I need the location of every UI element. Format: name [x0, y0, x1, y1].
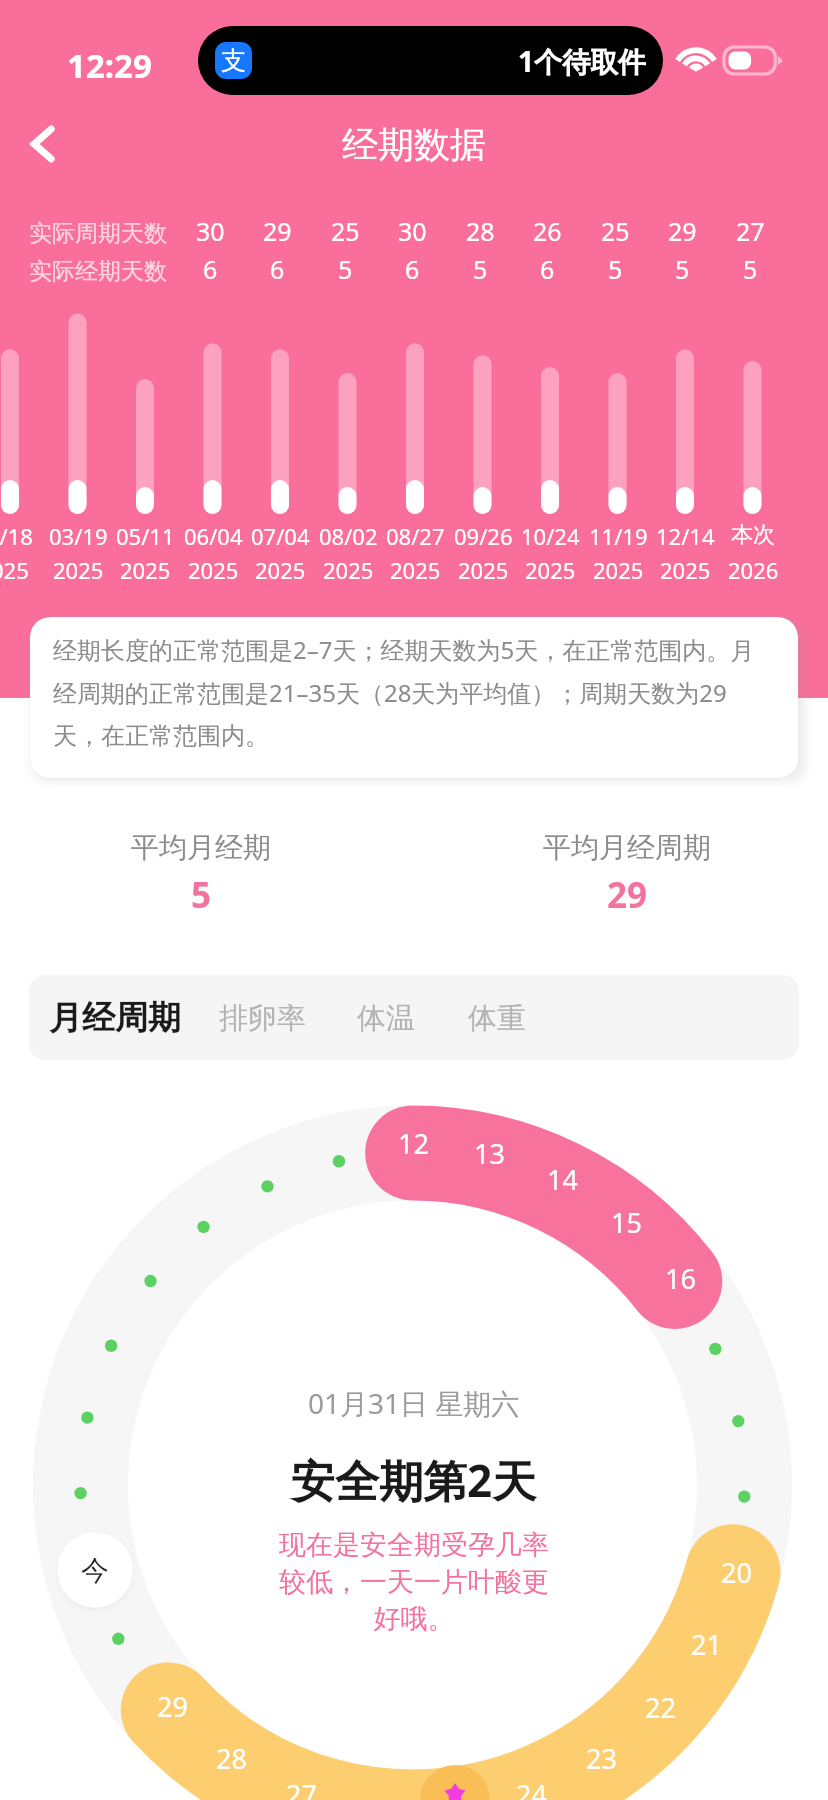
staticText: 现在是安全期受孕几率较低，一天一片叶酸更好哦。 [278, 1528, 550, 1636]
staticText: 26 [533, 214, 562, 248]
button[interactable]: 体重 [468, 1000, 526, 1037]
staticText: 6 [405, 252, 420, 286]
staticText: 07/04 [251, 521, 310, 551]
staticText: 29 [157, 1688, 188, 1725]
staticText: 5 [473, 252, 488, 286]
button[interactable]: 排卵率 [219, 1000, 306, 1037]
staticText: 01月31日 星期六 [308, 1384, 520, 1422]
staticText: 12/14 [656, 521, 715, 551]
staticText: 1个待取件 [518, 42, 647, 80]
staticText: 经期数据 [342, 122, 486, 167]
staticText: 2/18 [0, 521, 33, 551]
staticText: 10/24 [521, 521, 580, 551]
staticText: 15 [611, 1204, 642, 1241]
staticText: 今 [81, 1553, 109, 1588]
staticText: 5 [608, 252, 623, 286]
button[interactable]: 月经周期 [49, 997, 181, 1039]
staticText: 2025 [660, 555, 711, 585]
staticText: 2025 [53, 555, 104, 585]
staticText: 12:29 [67, 43, 152, 88]
staticText: 支 [221, 45, 246, 76]
staticText: 12 [398, 1125, 429, 1162]
button[interactable]: 体温 [357, 1000, 415, 1037]
staticText: 27 [736, 214, 765, 248]
button[interactable]: Back [12, 113, 74, 175]
staticText: 28 [216, 1740, 247, 1777]
staticText: 24 [516, 1776, 547, 1800]
staticText: 2025 [120, 555, 171, 585]
staticText: 本次 [731, 521, 775, 549]
staticText: 实际周期天数 [29, 219, 167, 248]
staticText: 2025 [593, 555, 644, 585]
staticText: 安全期第2天 [291, 1450, 537, 1510]
staticText: 2025 [525, 555, 576, 585]
staticText: 平均月经期 [131, 830, 271, 865]
staticText: 29 [607, 871, 648, 919]
staticText: 经期长度的正常范围是2–7天；经期天数为5天，在正常范围内。月经周期的正常范围是… [53, 633, 767, 751]
staticText: 16 [665, 1260, 696, 1297]
staticText: 11/19 [589, 521, 648, 551]
staticText: 2025 [323, 555, 374, 585]
staticText: 03/19 [49, 521, 108, 551]
staticText: 实际经期天数 [29, 257, 167, 286]
staticText: 22 [645, 1689, 676, 1726]
staticText: 09/26 [454, 521, 513, 551]
staticText: 27 [286, 1776, 317, 1800]
staticText: 20 [721, 1554, 752, 1591]
staticText: 5 [338, 252, 353, 286]
staticText: 30 [398, 214, 427, 248]
staticText: 29 [668, 214, 697, 248]
staticText: 05/11 [116, 521, 175, 551]
staticText: 13 [474, 1135, 505, 1172]
staticText: 5 [675, 252, 690, 286]
staticText: 14 [547, 1161, 578, 1198]
staticText: 6 [270, 252, 285, 286]
staticText: 2025 [458, 555, 509, 585]
staticText: 2025 [255, 555, 306, 585]
staticText: 5 [191, 871, 212, 919]
staticText: 25 [440, 1794, 471, 1800]
staticText: 30 [196, 214, 225, 248]
staticText: 2026 [728, 555, 779, 585]
staticText: 08/27 [386, 521, 445, 551]
staticText: 25 [331, 214, 360, 248]
staticText: 28 [466, 214, 495, 248]
staticText: 6 [203, 252, 218, 286]
staticText: 25 [601, 214, 630, 248]
staticText: 2025 [188, 555, 239, 585]
staticText: 2025 [390, 555, 441, 585]
staticText: 08/02 [319, 521, 378, 551]
staticText: 5 [743, 252, 758, 286]
staticText: 23 [586, 1740, 617, 1777]
staticText: 025 [0, 555, 29, 585]
button[interactable]: 今 [57, 1532, 133, 1608]
staticText: 06/04 [184, 521, 243, 551]
staticText: 29 [263, 214, 292, 248]
staticText: 6 [540, 252, 555, 286]
staticText: 21 [691, 1626, 722, 1663]
staticText: 平均月经周期 [543, 830, 711, 865]
